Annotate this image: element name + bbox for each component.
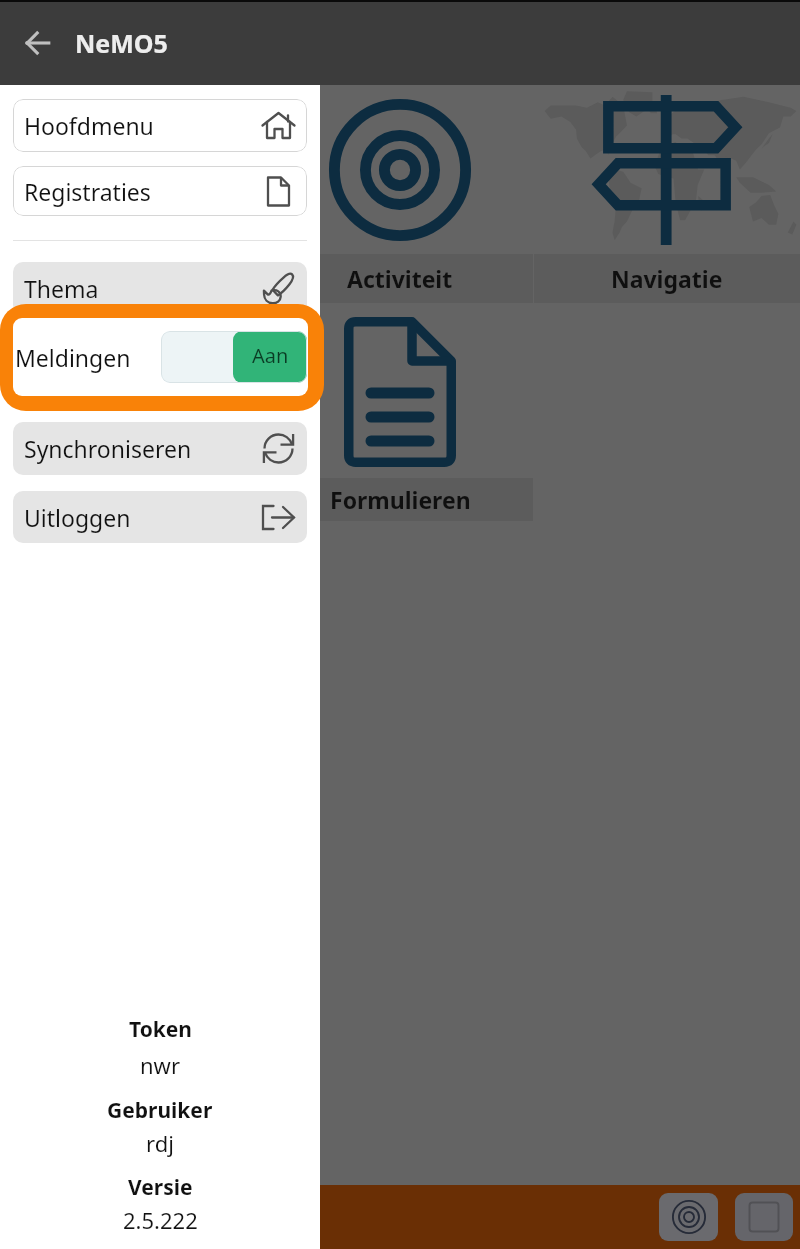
button[interactable]: Mail [0, 305, 266, 521]
button[interactable]: Navigatie [534, 85, 800, 303]
button[interactable]: Activiteit [267, 85, 533, 303]
staticText: Uitloggen [24, 502, 131, 533]
button[interactable]: Uitloggen [13, 491, 307, 543]
staticText: nwr [140, 1050, 180, 1080]
staticText: Activiteit [347, 263, 453, 294]
staticText: Thema [24, 273, 99, 304]
button[interactable]: Aan [161, 331, 307, 383]
staticText: Synchroniseren [24, 433, 192, 464]
staticText: Mail [108, 484, 158, 515]
button[interactable]: Hoofdmenu [13, 99, 307, 152]
staticText: Gebruiker [107, 1096, 213, 1125]
staticText: rdj [146, 1128, 174, 1158]
button[interactable]: Formulieren [267, 305, 533, 521]
button[interactable]: Activity [659, 1193, 718, 1241]
staticText: Formulieren [330, 484, 471, 515]
button[interactable]: Meldingen [0, 304, 324, 411]
staticText: Meldingen [15, 342, 131, 373]
staticText: NeMO5 [75, 26, 168, 60]
staticText: Token [129, 1015, 192, 1044]
staticText: Registraties [24, 176, 151, 207]
button[interactable]: Stop [735, 1193, 793, 1241]
staticText: Aan [252, 342, 289, 369]
staticText: Versie [128, 1173, 193, 1202]
staticText: Hoofdmenu [24, 110, 154, 141]
button[interactable]: Back [21, 26, 55, 60]
button[interactable]: Alarm [0, 85, 266, 303]
button[interactable]: Registraties [13, 166, 307, 216]
button[interactable]: Synchroniseren [13, 422, 307, 475]
staticText: 2.5.222 [123, 1205, 198, 1235]
staticText: Navigatie [611, 263, 723, 294]
button[interactable]: Thema [13, 262, 307, 315]
